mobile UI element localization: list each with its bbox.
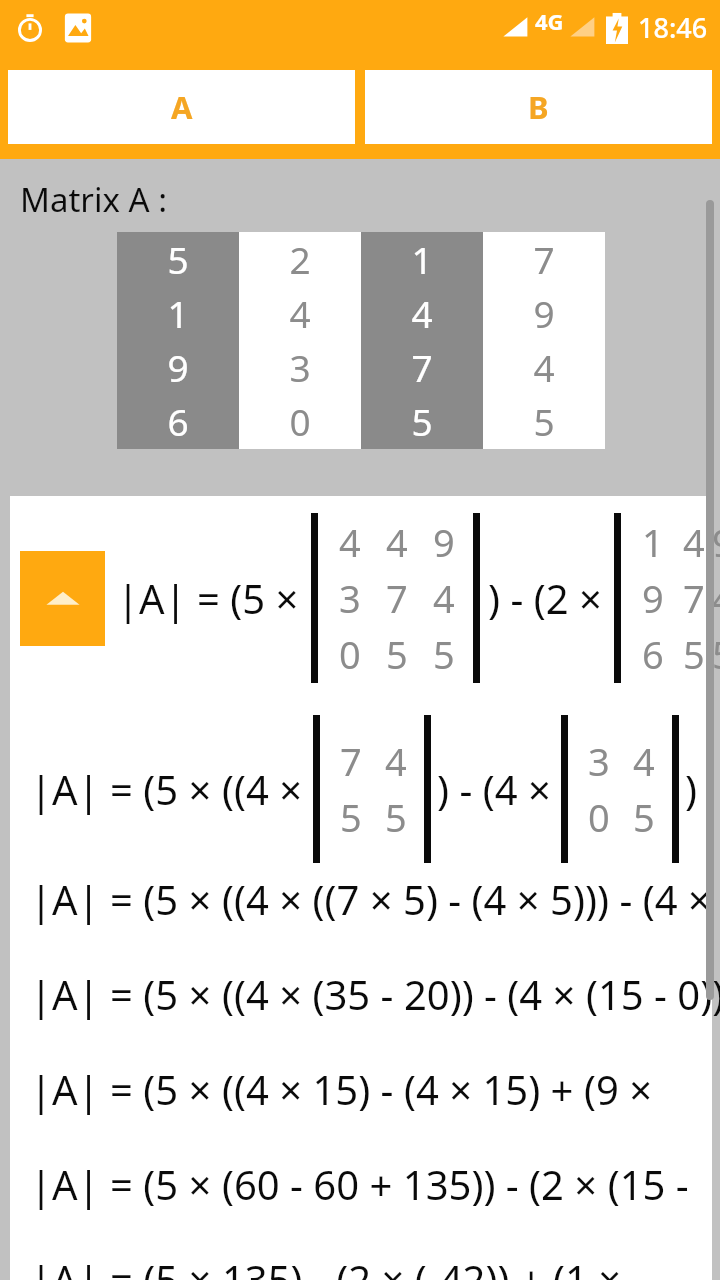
staticText: 0 (289, 396, 311, 446)
staticText: 5 (683, 628, 705, 680)
staticText: |A| = (5 × (60 - 60 + 135)) - (2 × (15 -… (30, 1157, 720, 1211)
staticText: 18:46 (638, 9, 708, 46)
staticText: |A| = (5 × (117, 571, 299, 625)
staticText: 7 (340, 735, 362, 787)
staticText: |A| = (5 × ((4 × (30, 762, 303, 816)
staticText: 7 (683, 572, 705, 624)
staticText: |A| = (5 × ((4 × (35 - 20)) - (4 × (15 -… (30, 967, 720, 1021)
staticText: 4 (386, 516, 408, 568)
staticText: 5 (386, 628, 408, 680)
staticText: 5 (167, 234, 189, 284)
staticText: 4 (385, 735, 407, 787)
staticText: 7 (386, 572, 408, 624)
staticText: ) - (2 × (488, 571, 602, 625)
staticText: |A| = (5 × ((4 × ((7 × 5) - (4 × 5))) - … (30, 872, 720, 926)
staticText: 3 (588, 735, 610, 787)
staticText: 5 (411, 396, 433, 446)
button[interactable]: Collapse (20, 551, 105, 646)
staticText: 5 (533, 396, 555, 446)
staticText: 4 (683, 516, 705, 568)
staticText: 5 (633, 791, 655, 843)
staticText: 3 (289, 342, 311, 392)
staticText: 1 (167, 288, 189, 338)
staticText: 3 (339, 572, 361, 624)
staticText: ) - (4 × (437, 762, 551, 816)
staticText: 0 (588, 791, 610, 843)
staticText: 1 (411, 234, 433, 284)
staticText: 1 (642, 516, 664, 568)
staticText: 5 (385, 791, 407, 843)
button[interactable]: B (365, 70, 712, 144)
button[interactable]: A (8, 70, 355, 144)
staticText: A (171, 86, 193, 128)
staticText: 4 (533, 342, 555, 392)
staticText: 4G (535, 6, 564, 36)
staticText: 4 (633, 735, 655, 787)
staticText: 9 (642, 572, 664, 624)
staticText: 7 (411, 342, 433, 392)
staticText: 4 (289, 288, 311, 338)
staticText: Matrix A : (20, 177, 168, 222)
staticText: 9 (533, 288, 555, 338)
staticText: 9 (433, 516, 455, 568)
staticText: 0 (339, 628, 361, 680)
staticText: |A| = (5 × 135) - (2 × (-42)) + (1 × (-2… (30, 1252, 720, 1280)
staticText: 6 (642, 628, 664, 680)
staticText: 7 (533, 234, 555, 284)
staticText: 5 (433, 628, 455, 680)
staticText: 9 (167, 342, 189, 392)
staticText: 5 (340, 791, 362, 843)
staticText: 4 (433, 572, 455, 624)
staticText: 4 (411, 288, 433, 338)
staticText: |A| = (5 × ((4 × 15) - (4 × 15) + (9 × 1… (30, 1062, 720, 1116)
staticText: 6 (167, 396, 189, 446)
staticText: 4 (339, 516, 361, 568)
staticText: ) + ( (685, 762, 712, 816)
staticText: B (528, 86, 549, 128)
staticText: 2 (289, 234, 311, 284)
